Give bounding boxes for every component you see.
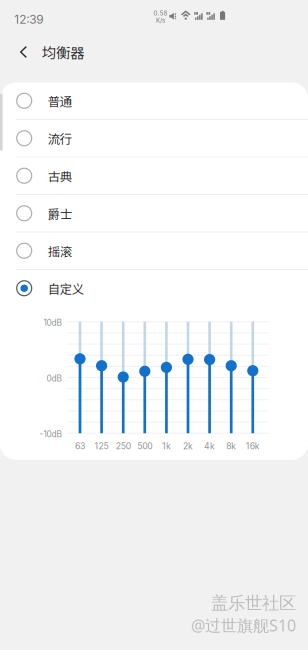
staticText: 普通 xyxy=(48,92,72,110)
staticText: 8k xyxy=(226,441,236,451)
staticText: 古典 xyxy=(48,167,72,185)
staticText: 12:39 xyxy=(14,12,43,27)
staticText: 1k xyxy=(162,441,171,451)
staticText: 63 xyxy=(75,441,85,451)
staticText: 摇滚 xyxy=(48,242,72,260)
button[interactable]: 古典 xyxy=(0,157,308,194)
staticText: 10dB xyxy=(43,318,61,328)
staticText: 0dB xyxy=(46,373,61,383)
button[interactable]: 摇滚 xyxy=(0,232,308,269)
staticText: 2k xyxy=(183,441,193,451)
staticText: 125 xyxy=(95,441,109,451)
button[interactable]: 普通 xyxy=(0,82,308,119)
staticText: 4k xyxy=(204,441,215,451)
staticText: 均衡器 xyxy=(42,42,84,62)
staticText: -10dB xyxy=(39,429,61,439)
button[interactable]: 自定义 xyxy=(0,270,308,306)
staticText: K/s xyxy=(156,17,165,24)
staticText: 盖乐世社区 xyxy=(211,592,296,614)
staticText: 500 xyxy=(137,441,152,451)
button[interactable]: 流行 xyxy=(0,120,308,156)
button[interactable]: Back xyxy=(0,40,35,64)
staticText: 0.58 xyxy=(153,9,167,17)
staticText: 流行 xyxy=(48,129,72,147)
staticText: 16k xyxy=(246,441,260,451)
staticText: 爵士 xyxy=(48,204,72,222)
button[interactable]: 爵士 xyxy=(0,195,308,231)
staticText: 250 xyxy=(116,441,131,451)
staticText: 自定义 xyxy=(48,279,84,297)
staticText: @过世旗舰S10 xyxy=(191,615,296,636)
